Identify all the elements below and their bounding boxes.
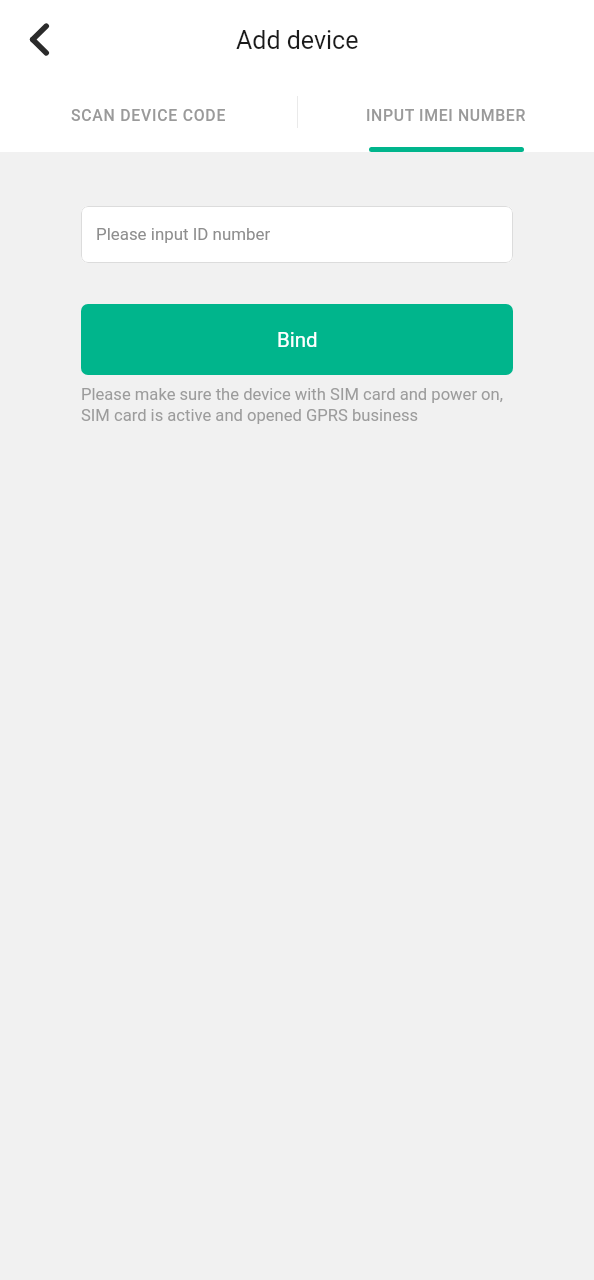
button[interactable]: SCAN DEVICE CODE	[0, 82, 297, 152]
button[interactable]: Back	[10, 10, 68, 68]
staticText: Please input ID number	[96, 224, 271, 244]
staticText: Bind	[277, 328, 318, 352]
button[interactable]: Please input ID number	[81, 206, 513, 263]
staticText: Please make sure the device with SIM car…	[81, 385, 513, 425]
button[interactable]: Bind	[81, 304, 513, 375]
staticText: Add device	[236, 26, 359, 55]
staticText: INPUT IMEI NUMBER	[366, 106, 526, 125]
staticText: SCAN DEVICE CODE	[71, 106, 227, 125]
button[interactable]: INPUT IMEI NUMBER	[297, 82, 594, 152]
